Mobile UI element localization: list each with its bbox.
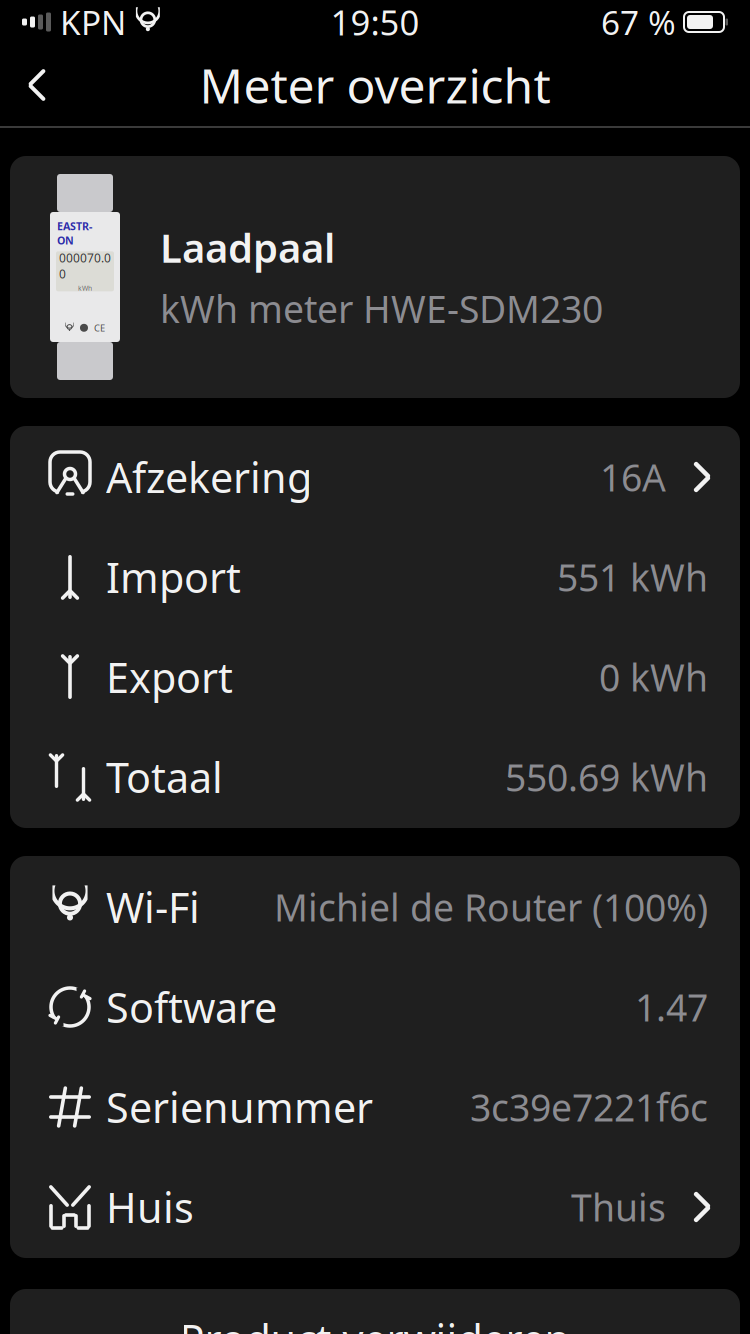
staticText: 16A — [600, 452, 666, 502]
staticText: Meter overzicht — [199, 53, 550, 117]
staticText: EASTRON — [57, 219, 92, 247]
staticText: Software — [106, 980, 277, 1034]
button[interactable]: Back — [0, 48, 74, 122]
staticText: 19:50 — [330, 0, 419, 45]
staticText: Serienummer — [106, 1080, 373, 1134]
staticText: Product verwijderen — [179, 1312, 570, 1334]
button[interactable]: Afzekering — [10, 427, 740, 527]
staticText: 551 kWh — [557, 552, 708, 602]
button[interactable]: Export — [10, 627, 740, 727]
button[interactable]: Import — [10, 527, 740, 627]
staticText: Totaal — [106, 750, 223, 804]
staticText: 3c39e7221f6c — [470, 1082, 708, 1132]
button[interactable]: Serienummer — [10, 1057, 740, 1157]
button[interactable]: Wi-Fi — [10, 857, 740, 957]
staticText: Thuis — [571, 1182, 666, 1232]
button[interactable]: Product verwijderen — [10, 1289, 740, 1334]
staticText: Wi-Fi — [106, 880, 200, 934]
staticText: Export — [106, 650, 233, 704]
staticText: kWh — [78, 284, 92, 293]
staticText: 67 % — [601, 0, 676, 44]
staticText: Import — [106, 550, 241, 604]
staticText: 0 kWh — [599, 652, 708, 702]
button[interactable]: Totaal — [10, 727, 740, 827]
staticText: Michiel de Router (100%) — [274, 882, 708, 932]
staticText: kWh meter HWE-SDM230 — [160, 284, 603, 333]
button[interactable]: Huis — [10, 1157, 740, 1257]
staticText: CE — [94, 322, 105, 334]
staticText: 000070.00 — [59, 250, 111, 282]
staticText: Afzekering — [106, 450, 312, 504]
button[interactable]: EASTRON — [10, 156, 740, 398]
staticText: 550.69 kWh — [505, 752, 708, 802]
staticText: Huis — [106, 1180, 194, 1234]
button[interactable]: Software — [10, 957, 740, 1057]
staticText: KPN — [60, 0, 126, 44]
staticText: Laadpaal — [160, 221, 335, 274]
staticText: 1.47 — [635, 982, 708, 1032]
